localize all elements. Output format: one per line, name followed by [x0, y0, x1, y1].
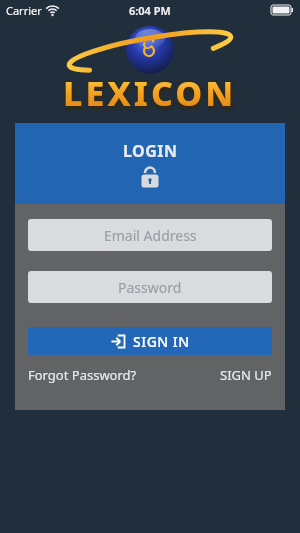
staticText: LEXICON	[63, 70, 237, 116]
staticText: Email Address	[104, 226, 197, 245]
button[interactable]: Email Address	[28, 219, 272, 251]
button[interactable]: Forgot Password?	[28, 366, 137, 384]
button[interactable]: SIGN IN	[28, 327, 272, 355]
staticText: Carrier	[6, 3, 42, 18]
staticText: SIGN IN	[133, 332, 190, 351]
staticText: LOGIN	[123, 140, 178, 162]
button[interactable]: Password	[28, 271, 272, 303]
button[interactable]: SIGN UP	[220, 366, 272, 384]
staticText: Password	[118, 278, 182, 297]
staticText: 6:04 PM	[129, 3, 171, 18]
